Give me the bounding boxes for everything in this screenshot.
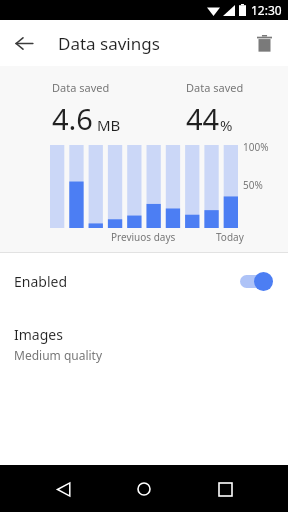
staticText: 12:30 [251,2,282,18]
staticText: 4.6 [52,99,93,138]
button[interactable]: Recent apps [208,472,242,506]
staticText: Enabled [14,272,68,291]
staticText: 44 [186,99,220,138]
staticText: % [220,115,233,135]
button[interactable]: Enabled [0,253,288,309]
staticText: Images [14,325,63,344]
staticText: MB [97,115,121,135]
staticText: Data savings [58,32,160,55]
button[interactable]: Home [127,472,161,506]
button[interactable]: Images [0,309,288,379]
staticText: 100% [243,140,269,154]
staticText: Previuos days [111,230,176,244]
staticText: Medium quality [14,347,103,363]
button[interactable]: Back [6,25,42,61]
staticText: 50% [243,178,263,192]
button[interactable]: Back [46,472,80,506]
staticText: Data saved [52,80,110,95]
button[interactable]: Delete [247,26,281,60]
staticText: Today [216,230,244,244]
staticText: Data saved [186,80,244,95]
